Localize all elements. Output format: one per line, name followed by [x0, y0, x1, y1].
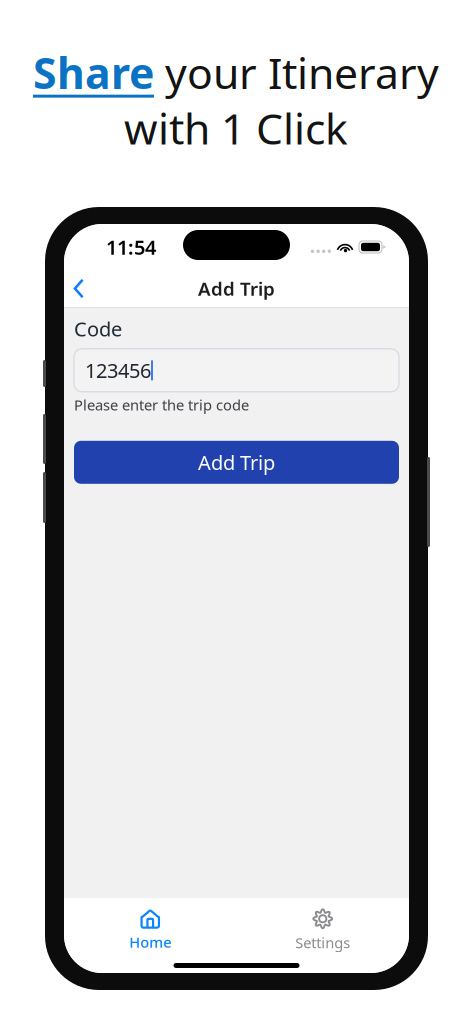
staticText: 11:54	[106, 234, 156, 260]
staticText: Add Trip	[198, 276, 275, 301]
button[interactable]: Back	[64, 270, 96, 306]
staticText: Code	[74, 315, 122, 342]
staticText: Add Trip	[198, 449, 275, 476]
staticText: Home	[129, 932, 171, 952]
staticText: your Itinerary	[154, 44, 439, 101]
staticText: 123456	[85, 357, 151, 384]
staticText: Please enter the trip code	[74, 395, 249, 415]
staticText: Settings	[295, 933, 350, 952]
button[interactable]: Settings	[236, 905, 409, 955]
staticText: with 1 Click	[124, 100, 348, 156]
button[interactable]: Home	[64, 905, 236, 955]
button[interactable]: Add Trip	[74, 441, 399, 484]
staticText: Share	[33, 44, 154, 101]
